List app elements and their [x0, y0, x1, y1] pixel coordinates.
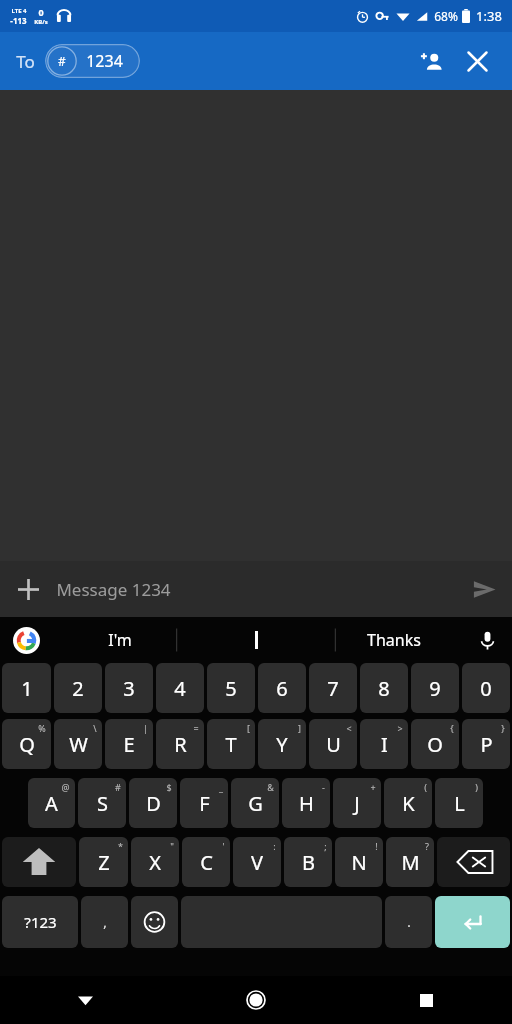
staticText: KB/s	[34, 18, 48, 26]
staticText: O	[427, 731, 443, 758]
button[interactable]: Thanks	[325, 617, 462, 663]
button[interactable]: Emoji	[131, 896, 178, 948]
button[interactable]: 9	[411, 663, 459, 713]
staticText: F	[199, 790, 210, 817]
staticText: 3	[123, 675, 135, 702]
button[interactable]: Add person	[408, 38, 454, 84]
button[interactable]: L	[435, 778, 483, 828]
button[interactable]: ,	[81, 896, 128, 948]
button[interactable]: 0	[462, 663, 510, 713]
staticText: 9	[429, 675, 441, 702]
button[interactable]: U	[309, 719, 357, 769]
button[interactable]: Enter	[435, 896, 510, 948]
button[interactable]: Recents	[341, 976, 512, 1024]
staticText: 7	[327, 675, 339, 702]
button[interactable]	[188, 617, 325, 663]
staticText: LTE 4	[11, 7, 27, 15]
staticText: :	[273, 840, 276, 852]
staticText: Z	[98, 849, 110, 876]
button[interactable]: T	[207, 719, 255, 769]
button[interactable]: Backspace	[437, 837, 510, 887]
button[interactable]: K	[384, 778, 432, 828]
staticText: C	[200, 849, 213, 876]
button[interactable]: Home	[170, 976, 341, 1024]
staticText: -113	[10, 15, 27, 26]
button[interactable]: Q	[2, 719, 51, 769]
button[interactable]: X	[131, 837, 179, 887]
staticText: 1	[21, 675, 33, 702]
button[interactable]: F	[180, 778, 228, 828]
button[interactable]: 8	[360, 663, 408, 713]
staticText: ?	[425, 840, 429, 852]
button[interactable]: Message 1234	[56, 561, 456, 617]
button[interactable]: Voice input	[462, 617, 512, 663]
staticText: Thanks	[367, 629, 421, 651]
staticText: >	[397, 722, 403, 734]
button[interactable]: P	[462, 719, 510, 769]
staticText: A	[45, 790, 58, 817]
staticText: &	[267, 781, 274, 793]
button[interactable]: #	[45, 44, 140, 78]
button[interactable]: 7	[309, 663, 357, 713]
button[interactable]: Send	[456, 561, 512, 617]
staticText: D	[146, 790, 161, 817]
staticText: [	[247, 722, 250, 734]
staticText: W	[69, 731, 88, 758]
staticText: \	[93, 722, 97, 734]
staticText: Y	[276, 731, 288, 758]
staticText: J	[354, 790, 360, 817]
staticText: "	[170, 840, 174, 852]
button[interactable]: 3	[105, 663, 153, 713]
staticText: Q	[19, 731, 35, 758]
staticText: !	[375, 840, 378, 852]
staticText: X	[149, 849, 161, 876]
staticText: #	[115, 781, 121, 793]
button[interactable]: 1	[2, 663, 51, 713]
button[interactable]: H	[282, 778, 330, 828]
button[interactable]: M	[386, 837, 434, 887]
button[interactable]: G	[231, 778, 279, 828]
staticText: B	[302, 849, 315, 876]
button[interactable]: Back	[0, 976, 170, 1024]
button[interactable]: V	[233, 837, 281, 887]
staticText: '	[222, 840, 225, 852]
button[interactable]: J	[333, 778, 381, 828]
staticText: 1:38	[476, 7, 502, 25]
staticText: (	[424, 781, 427, 793]
button[interactable]: Y	[258, 719, 306, 769]
button[interactable]: ?123	[2, 896, 78, 948]
button[interactable]: 6	[258, 663, 306, 713]
button[interactable]: Google	[0, 617, 52, 663]
button[interactable]: Attach	[0, 561, 56, 617]
button[interactable]: B	[284, 837, 332, 887]
button[interactable]: 4	[156, 663, 204, 713]
button[interactable]: E	[105, 719, 153, 769]
button[interactable]: Close	[454, 38, 500, 84]
button[interactable]: O	[411, 719, 459, 769]
staticText: V	[251, 849, 263, 876]
button[interactable]: A	[28, 778, 75, 828]
staticText: 5	[225, 675, 237, 702]
button[interactable]: 5	[207, 663, 255, 713]
staticText: N	[351, 849, 367, 876]
button[interactable]: 2	[54, 663, 102, 713]
button[interactable]: N	[335, 837, 383, 887]
button[interactable]: S	[78, 778, 126, 828]
staticText: $	[166, 781, 172, 793]
staticText: U	[326, 731, 341, 758]
button[interactable]: Z	[79, 837, 128, 887]
button[interactable]: Shift	[2, 837, 76, 887]
button[interactable]: I'm	[52, 617, 188, 663]
staticText: ]	[298, 722, 301, 734]
button[interactable]: R	[156, 719, 204, 769]
staticText: #	[58, 53, 66, 69]
button[interactable]: W	[54, 719, 102, 769]
button[interactable]: I	[360, 719, 408, 769]
button[interactable]: C	[182, 837, 230, 887]
staticText: G	[248, 790, 263, 817]
button[interactable]: D	[129, 778, 177, 828]
staticText: )	[475, 781, 478, 793]
staticText: -	[322, 781, 325, 793]
button[interactable]: .	[385, 896, 432, 948]
